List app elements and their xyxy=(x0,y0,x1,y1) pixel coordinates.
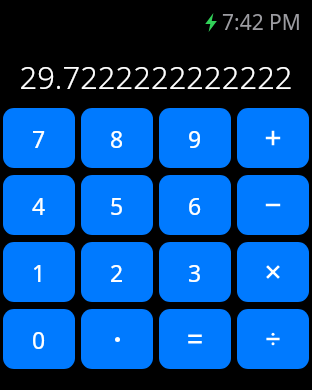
button[interactable]: Equals xyxy=(159,309,231,369)
staticText: 8 xyxy=(110,123,124,154)
button[interactable]: Minus xyxy=(237,175,309,235)
staticText: 9 xyxy=(188,123,202,154)
button[interactable]: 4 xyxy=(3,175,75,235)
button[interactable]: 0 xyxy=(3,309,75,369)
button[interactable]: Divide xyxy=(237,309,309,369)
button[interactable]: 5 xyxy=(81,175,153,235)
staticText: 7 xyxy=(32,123,46,154)
button[interactable]: 7 xyxy=(3,108,75,168)
staticText: 0 xyxy=(32,324,46,355)
button[interactable]: Multiply xyxy=(237,242,309,302)
staticText: 3 xyxy=(188,257,202,288)
button[interactable]: Plus xyxy=(237,108,309,168)
button[interactable]: 3 xyxy=(159,242,231,302)
button[interactable]: 9 xyxy=(159,108,231,168)
button[interactable]: 6 xyxy=(159,175,231,235)
staticText: 7:42 PM xyxy=(222,8,301,37)
staticText: 5 xyxy=(110,190,124,221)
staticText: 1 xyxy=(32,257,46,288)
button[interactable]: Decimal point xyxy=(81,309,153,369)
staticText: 2 xyxy=(110,257,124,288)
staticText: 6 xyxy=(188,190,202,221)
button[interactable]: 8 xyxy=(81,108,153,168)
staticText: 4 xyxy=(32,190,46,221)
button[interactable]: 2 xyxy=(81,242,153,302)
staticText: 29.7222222222222 xyxy=(3,56,309,98)
button[interactable]: 1 xyxy=(3,242,75,302)
